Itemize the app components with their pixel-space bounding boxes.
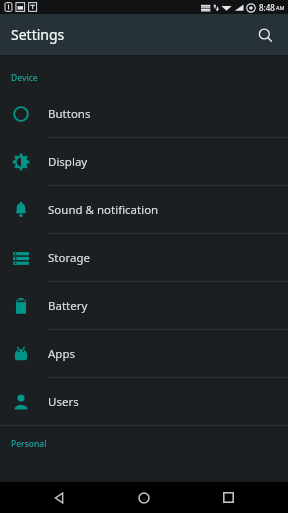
staticText: Settings: [11, 25, 65, 44]
button[interactable]: Display: [0, 138, 288, 186]
staticText: Sound & notification: [48, 202, 159, 218]
button[interactable]: Buttons: [0, 90, 288, 138]
button[interactable]: Battery: [0, 282, 288, 330]
button[interactable]: Back: [36, 482, 84, 513]
staticText: Users: [48, 394, 79, 410]
staticText: Storage: [48, 250, 90, 266]
button[interactable]: Recent apps: [204, 482, 252, 513]
staticText: Buttons: [48, 106, 91, 122]
staticText: Device: [11, 72, 38, 84]
button[interactable]: Apps: [0, 330, 288, 378]
staticText: AM: [276, 4, 285, 11]
staticText: Display: [48, 154, 88, 170]
button[interactable]: Storage: [0, 234, 288, 282]
staticText: Personal: [11, 438, 47, 450]
staticText: Battery: [48, 298, 88, 314]
staticText: Apps: [48, 346, 76, 362]
staticText: 8:48: [259, 2, 275, 13]
button[interactable]: Users: [0, 378, 288, 426]
button[interactable]: Sound & notification: [0, 186, 288, 234]
button[interactable]: Search: [248, 18, 282, 52]
button[interactable]: Home: [120, 482, 168, 513]
